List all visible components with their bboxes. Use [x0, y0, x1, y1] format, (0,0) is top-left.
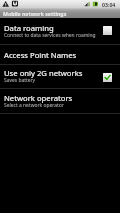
button[interactable]: Data roaming — [0, 18, 120, 44]
staticText: Network operators — [4, 93, 73, 103]
staticText: 03:04 — [102, 1, 116, 8]
button[interactable]: Use only 2G networks — [0, 65, 120, 88]
staticText: Data roaming — [4, 23, 54, 33]
button[interactable]: Unchecked — [103, 26, 112, 35]
staticText: Access Point Names — [4, 50, 77, 60]
staticText: Select a network operator — [4, 102, 64, 109]
staticText: Mobile network settings — [3, 10, 67, 17]
staticText: Connect to data services when roaming — [4, 32, 96, 39]
button[interactable]: Network operators — [0, 89, 120, 113]
staticText: Saves battery — [4, 77, 36, 84]
staticText: Use only 2G networks — [4, 68, 83, 78]
button[interactable]: Checked — [103, 73, 112, 82]
button[interactable]: Access Point Names — [0, 45, 120, 64]
